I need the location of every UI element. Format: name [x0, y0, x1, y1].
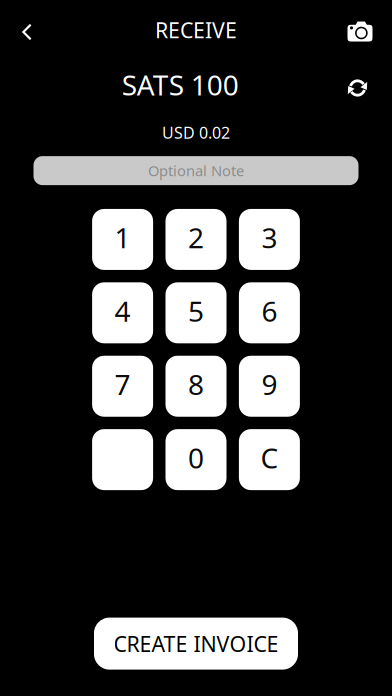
button[interactable]: Back: [6, 8, 48, 52]
button[interactable]: 6: [239, 282, 300, 343]
staticText: 4: [115, 292, 131, 329]
staticText: SATS 100: [122, 66, 239, 103]
staticText: 6: [261, 292, 277, 329]
staticText: 7: [115, 366, 131, 403]
button[interactable]: 5: [165, 282, 226, 343]
button[interactable]: 7: [92, 356, 153, 417]
button[interactable]: 3: [239, 209, 300, 270]
staticText: 9: [261, 366, 277, 403]
staticText: Optional Note: [148, 161, 244, 180]
button[interactable]: CREATE INVOICE: [94, 618, 298, 670]
staticText: CREATE INVOICE: [113, 629, 278, 658]
button[interactable]: [92, 429, 153, 490]
staticText: 1: [115, 219, 131, 256]
staticText: 8: [188, 366, 204, 403]
staticText: 0: [188, 439, 204, 476]
staticText: 2: [188, 219, 204, 256]
button[interactable]: C: [239, 429, 300, 490]
button[interactable]: 4: [92, 282, 153, 343]
staticText: RECEIVE: [155, 16, 237, 44]
button[interactable]: 0: [165, 429, 226, 490]
button[interactable]: 1: [92, 209, 153, 270]
button[interactable]: Scan QR code: [339, 8, 381, 52]
staticText: USD 0.02: [162, 122, 230, 143]
button[interactable]: 2: [165, 209, 226, 270]
button[interactable]: 8: [165, 356, 226, 417]
staticText: 3: [261, 219, 277, 256]
button[interactable]: Switch currency: [336, 66, 378, 110]
button[interactable]: Optional Note: [0, 156, 392, 185]
staticText: C: [260, 439, 278, 476]
button[interactable]: 9: [239, 356, 300, 417]
staticText: 5: [188, 292, 204, 329]
